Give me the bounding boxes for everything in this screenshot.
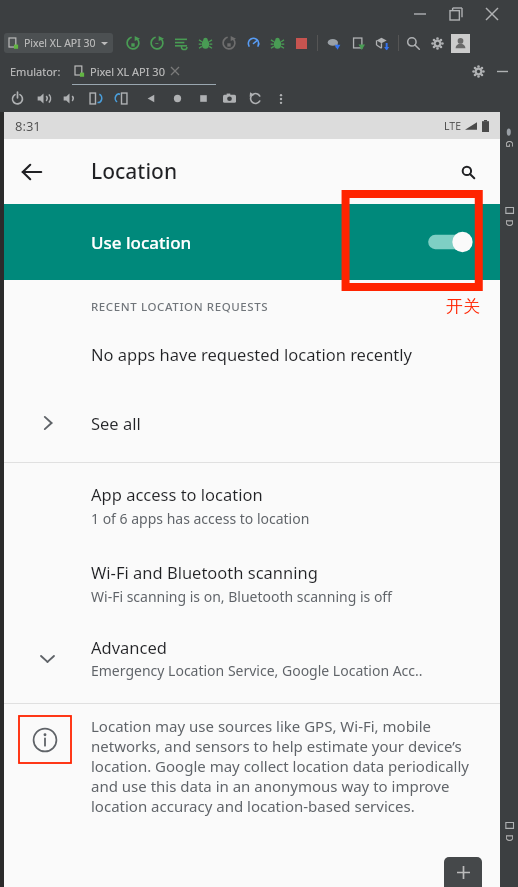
button[interactable]: Gradle: [500, 114, 518, 160]
button[interactable]: More: [268, 86, 294, 111]
staticText: 1 of 6 apps has access to location: [91, 509, 310, 528]
button[interactable]: Add: [444, 857, 482, 887]
staticText: Emulator:: [10, 64, 61, 79]
button[interactable]: Logcat: [169, 30, 193, 56]
button[interactable]: No apps have requested location recently: [4, 343, 500, 365]
staticText: Wi-Fi and Bluetooth scanning: [91, 561, 318, 583]
staticText: Location: [91, 157, 178, 186]
staticText: RECENT LOCATION REQUESTS: [91, 299, 269, 315]
staticText: 开关: [446, 296, 480, 317]
button[interactable]: Stop: [289, 30, 313, 56]
button[interactable]: Pixel XL API 30: [4, 33, 113, 53]
staticText: LTE: [444, 119, 461, 133]
button[interactable]: Apply Changes: [145, 30, 169, 56]
staticText: Gradle: [502, 140, 515, 146]
staticText: Device Manager: [502, 219, 515, 225]
staticText: Wi-Fi scanning is on, Bluetooth scanning…: [91, 587, 392, 606]
staticText: 8:31: [15, 117, 41, 135]
button[interactable]: Screenshot: [216, 86, 242, 111]
button[interactable]: Back: [4, 144, 60, 200]
button[interactable]: Use location: [4, 204, 500, 280]
button[interactable]: Debug: [193, 30, 217, 56]
staticText: Pixel XL API 30: [24, 36, 96, 50]
staticText: No apps have requested location recently: [91, 343, 412, 365]
button[interactable]: Profiler: [241, 30, 265, 56]
staticText: Device File Explo: [502, 834, 515, 840]
button[interactable]: Gradle Sync: [322, 30, 346, 56]
button[interactable]: Back: [138, 86, 164, 111]
button[interactable]: Debug App: [265, 30, 289, 56]
button[interactable]: Settings: [425, 30, 449, 56]
button[interactable]: History: [242, 86, 268, 111]
button[interactable]: Attach: [217, 30, 241, 56]
button[interactable]: Search: [401, 30, 425, 56]
button[interactable]: Power: [4, 86, 30, 111]
staticText: Emergency Location Service, Google Locat…: [91, 661, 423, 680]
button[interactable]: AVD Manager: [346, 30, 370, 56]
staticText: Pixel XL API 30: [90, 64, 165, 79]
staticText: Location may use sources like GPS, Wi-Fi…: [91, 716, 480, 816]
staticText: See all: [91, 412, 141, 434]
staticText: App access to location: [91, 483, 263, 505]
button[interactable]: Minimize: [402, 1, 438, 27]
button[interactable]: Volume down: [56, 86, 82, 111]
button[interactable]: Hide: [490, 59, 514, 83]
button[interactable]: Volume up: [30, 86, 56, 111]
staticText: Advanced: [91, 636, 167, 658]
button[interactable]: Account: [451, 34, 470, 53]
button[interactable]: See all: [4, 401, 500, 445]
button[interactable]: Overview: [190, 86, 216, 111]
button[interactable]: Rotate right: [108, 86, 134, 111]
button[interactable]: Pixel XL API 30: [75, 58, 179, 84]
button[interactable]: Restore: [438, 1, 474, 27]
button[interactable]: Rotate left: [82, 86, 108, 111]
button[interactable]: Device Manager: [500, 168, 518, 264]
button[interactable]: SDK Manager: [370, 30, 394, 56]
button[interactable]: Wi-Fi and Bluetooth scanning: [4, 561, 500, 606]
button[interactable]: Advanced: [4, 636, 500, 680]
button[interactable]: Home: [164, 86, 190, 111]
staticText: Use location: [91, 231, 192, 254]
button[interactable]: Run: [121, 30, 145, 56]
button[interactable]: App access to location: [4, 483, 500, 528]
button[interactable]: Device File Explo: [500, 779, 518, 883]
button[interactable]: Emulator settings: [466, 59, 490, 83]
button[interactable]: Close: [474, 1, 510, 27]
button[interactable]: Search: [440, 144, 496, 200]
